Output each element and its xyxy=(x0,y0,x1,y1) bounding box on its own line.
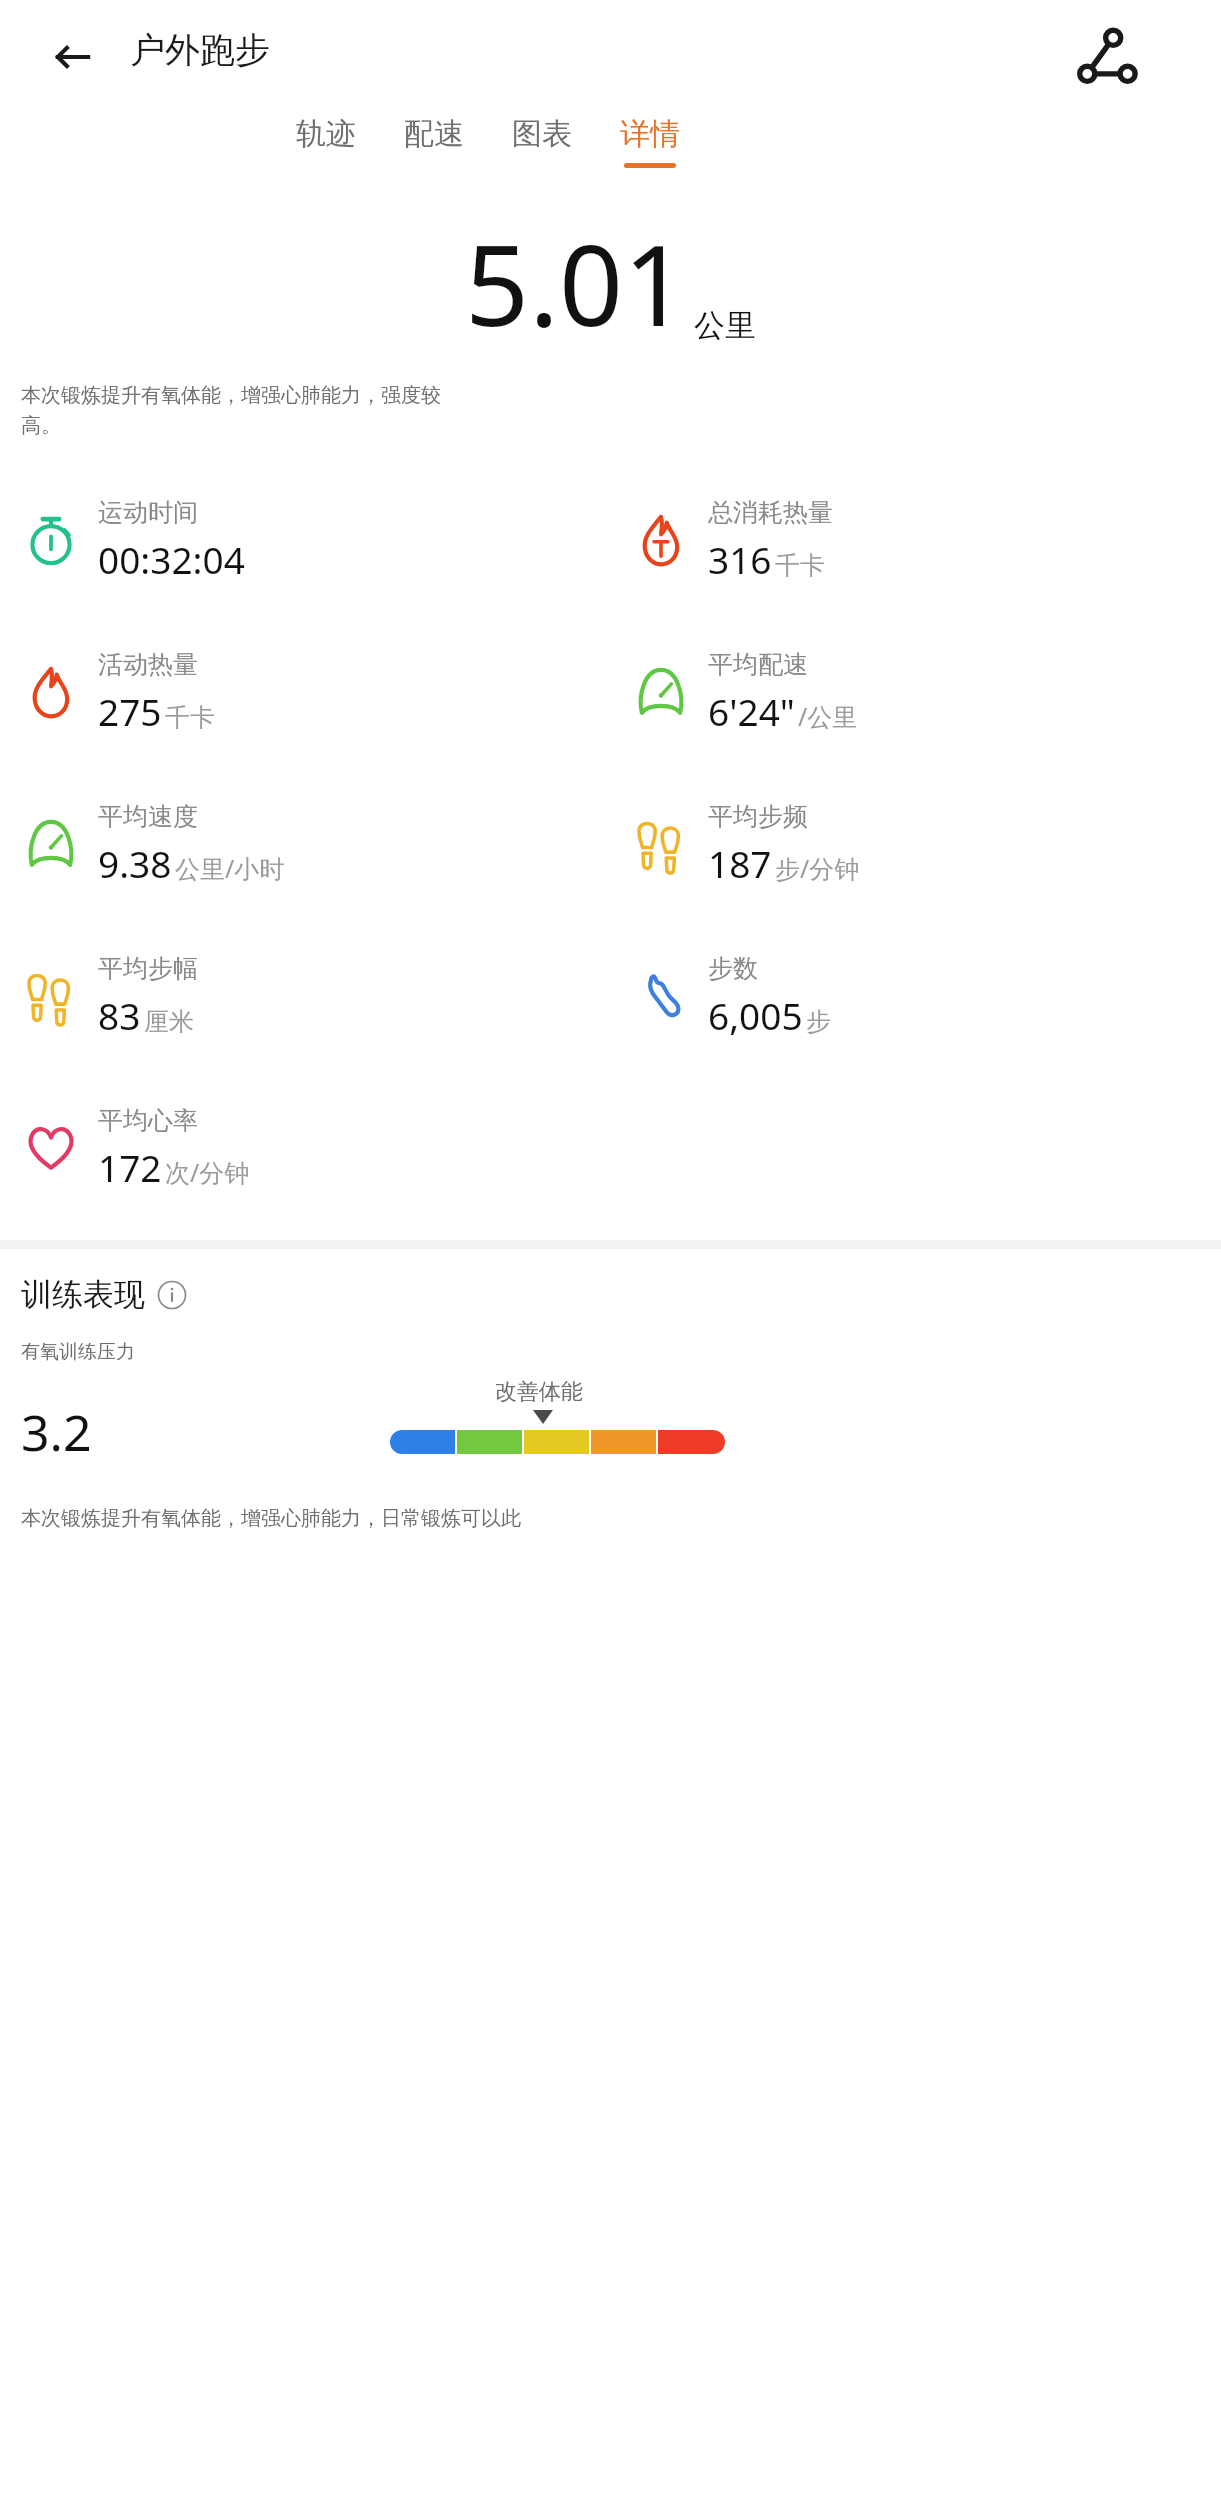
staticText: 83 xyxy=(98,990,141,1040)
button[interactable]: 平均配速 xyxy=(610,612,1221,764)
staticText: 172 xyxy=(98,1142,162,1192)
button[interactable]: 平均速度 xyxy=(0,764,610,916)
staticText: 图表 xyxy=(512,115,572,153)
staticText: 9.38 xyxy=(98,838,172,888)
staticText: 6,005 xyxy=(708,990,803,1040)
staticText: 5.01 xyxy=(465,206,688,359)
staticText: 步 xyxy=(806,1006,831,1037)
staticText: 配速 xyxy=(404,115,464,153)
staticText: 详情 xyxy=(620,115,680,153)
staticText: 187 xyxy=(708,838,772,888)
staticText: 公里 xyxy=(694,306,756,345)
button[interactable]: 平均步频 xyxy=(610,764,1221,916)
button[interactable]: 活动热量 xyxy=(0,612,610,764)
button[interactable]: 平均心率 xyxy=(0,1068,610,1220)
staticText: 改善体能 xyxy=(495,1378,583,1406)
staticText: 316 xyxy=(708,534,772,584)
button[interactable]: 训练表现 xyxy=(21,1275,187,1314)
staticText: 户外跑步 xyxy=(130,28,270,72)
staticText: 轨迹 xyxy=(296,115,356,153)
button[interactable]: 配速 xyxy=(398,115,470,168)
staticText: 00:32:04 xyxy=(98,534,245,584)
staticText: 步数 xyxy=(708,953,758,984)
staticText: 平均速度 xyxy=(98,801,198,832)
staticText: 总消耗热量 xyxy=(708,497,833,528)
button[interactable]: 图表 xyxy=(506,115,578,168)
staticText: 平均步幅 xyxy=(98,953,198,984)
button[interactable]: 运动时间 xyxy=(0,460,610,612)
staticText: 平均心率 xyxy=(98,1105,198,1136)
button[interactable]: Share xyxy=(1070,22,1142,94)
staticText: 6'24" xyxy=(708,686,795,736)
staticText: 千卡 xyxy=(165,702,215,733)
staticText: 运动时间 xyxy=(98,497,198,528)
staticText: 275 xyxy=(98,686,162,736)
button[interactable]: 详情 xyxy=(614,115,686,168)
staticText: 平均步频 xyxy=(708,801,808,832)
button[interactable]: 轨迹 xyxy=(290,115,362,168)
staticText: 步/分钟 xyxy=(775,851,860,885)
staticText: 平均配速 xyxy=(708,649,808,680)
staticText: 本次锻炼提升有氧体能，增强心肺能力，日常锻炼可以此 xyxy=(21,1506,521,1531)
button[interactable]: 步数 xyxy=(610,916,1221,1068)
staticText: 训练表现 xyxy=(21,1275,145,1314)
staticText: 千卡 xyxy=(775,550,825,581)
staticText: 活动热量 xyxy=(98,649,198,680)
staticText: 次/分钟 xyxy=(165,1155,250,1189)
staticText: 3.2 xyxy=(21,1398,92,1466)
button[interactable]: 总消耗热量 xyxy=(610,460,1221,612)
staticText: 厘米 xyxy=(144,1006,194,1037)
staticText: 公里/小时 xyxy=(175,851,285,885)
button[interactable]: Back xyxy=(40,24,106,90)
staticText: 本次锻炼提升有氧体能，增强心肺能力，强度较 高。 xyxy=(21,383,441,438)
staticText: 有氧训练压力 xyxy=(21,1340,135,1364)
other: Info xyxy=(157,1280,187,1310)
staticText: /公里 xyxy=(798,699,858,733)
button[interactable]: 平均步幅 xyxy=(0,916,610,1068)
